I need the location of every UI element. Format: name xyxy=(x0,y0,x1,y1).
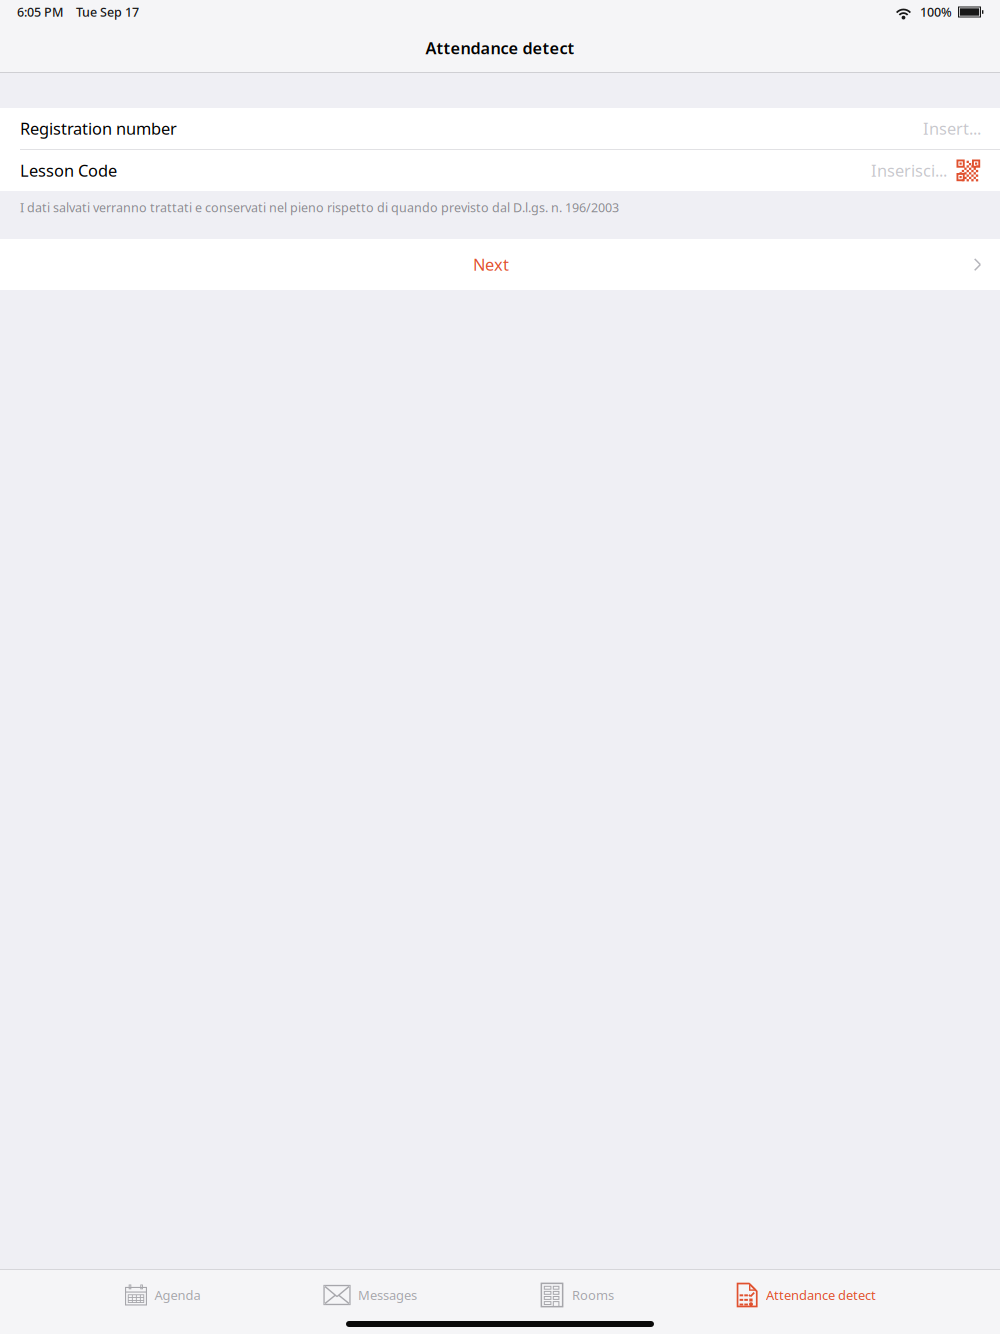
staticText: Registration number xyxy=(20,118,177,139)
staticText: Tue Sep 17 xyxy=(76,4,139,20)
button[interactable]: Scan QR code xyxy=(956,159,981,181)
staticText: Agenda xyxy=(154,1286,200,1304)
button[interactable]: Next xyxy=(0,239,1000,290)
staticText: Rooms xyxy=(572,1286,614,1304)
staticText: 100% xyxy=(920,4,952,20)
button[interactable]: Attendance detect xyxy=(736,1270,876,1320)
button[interactable]: Messages xyxy=(323,1270,417,1320)
staticText: Insert... xyxy=(923,118,981,139)
staticText: Inserisci... xyxy=(871,160,947,181)
button[interactable]: Lesson Code xyxy=(0,150,1000,191)
button[interactable]: Rooms xyxy=(540,1270,614,1320)
staticText: Next xyxy=(473,254,509,275)
staticText: Attendance detect xyxy=(425,37,574,59)
button[interactable]: Registration number xyxy=(0,108,1000,149)
button[interactable]: Agenda xyxy=(124,1270,200,1320)
staticText: 6:05 PM xyxy=(17,4,64,20)
staticText: Lesson Code xyxy=(20,160,117,181)
staticText: Messages xyxy=(358,1286,417,1304)
staticText: I dati salvati verranno trattati e conse… xyxy=(20,199,619,216)
staticText: Attendance detect xyxy=(766,1286,876,1304)
